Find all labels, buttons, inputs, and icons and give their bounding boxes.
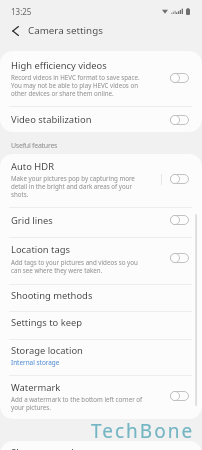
staticText: Add tags to your pictures and videos so … xyxy=(11,258,145,274)
button[interactable]: Shooting methods xyxy=(0,283,202,307)
staticText: Camera settings xyxy=(28,24,103,37)
staticText: Internal storage xyxy=(11,358,145,367)
button[interactable]: Auto HDR xyxy=(0,154,202,178)
staticText: Video stabilization xyxy=(11,113,92,126)
staticText: Add a watermark to the bottom left corne… xyxy=(11,395,145,411)
button[interactable]: Storage location xyxy=(0,338,202,362)
staticText: TechBone xyxy=(91,418,195,444)
staticText: Storage location xyxy=(11,344,83,357)
staticText: Grid lines xyxy=(11,214,53,227)
button[interactable]: Back xyxy=(5,21,26,40)
staticText: Useful features xyxy=(11,141,58,151)
button[interactable]: Toggle xyxy=(166,70,193,86)
button[interactable]: Watermark xyxy=(0,375,202,399)
button[interactable]: High efficiency videos xyxy=(0,53,202,77)
staticText: Shooting methods xyxy=(11,289,93,302)
staticText: Location tags xyxy=(11,243,71,256)
button[interactable]: Toggle xyxy=(166,212,193,228)
staticText: Shutter sound xyxy=(11,446,74,450)
staticText: Watermark xyxy=(11,381,61,394)
button[interactable]: Toggle xyxy=(166,112,193,128)
staticText: High efficiency videos xyxy=(11,59,107,72)
button[interactable]: Shutter sound xyxy=(0,440,202,450)
button[interactable]: Toggle xyxy=(166,171,193,187)
staticText: Auto HDR xyxy=(11,160,54,173)
staticText: Settings to keep xyxy=(11,316,83,329)
button[interactable]: Settings to keep xyxy=(0,310,202,334)
button[interactable]: Grid lines xyxy=(0,208,202,232)
button[interactable]: Video stabilization xyxy=(0,107,202,131)
staticText: 13:25 xyxy=(11,6,32,17)
button[interactable]: Toggle xyxy=(166,388,193,404)
staticText: Record videos in HEVC format to save spa… xyxy=(11,73,145,97)
staticText: Make your pictures pop by capturing more… xyxy=(11,174,145,198)
button[interactable]: Toggle xyxy=(166,250,193,266)
button[interactable]: Location tags xyxy=(0,237,202,261)
